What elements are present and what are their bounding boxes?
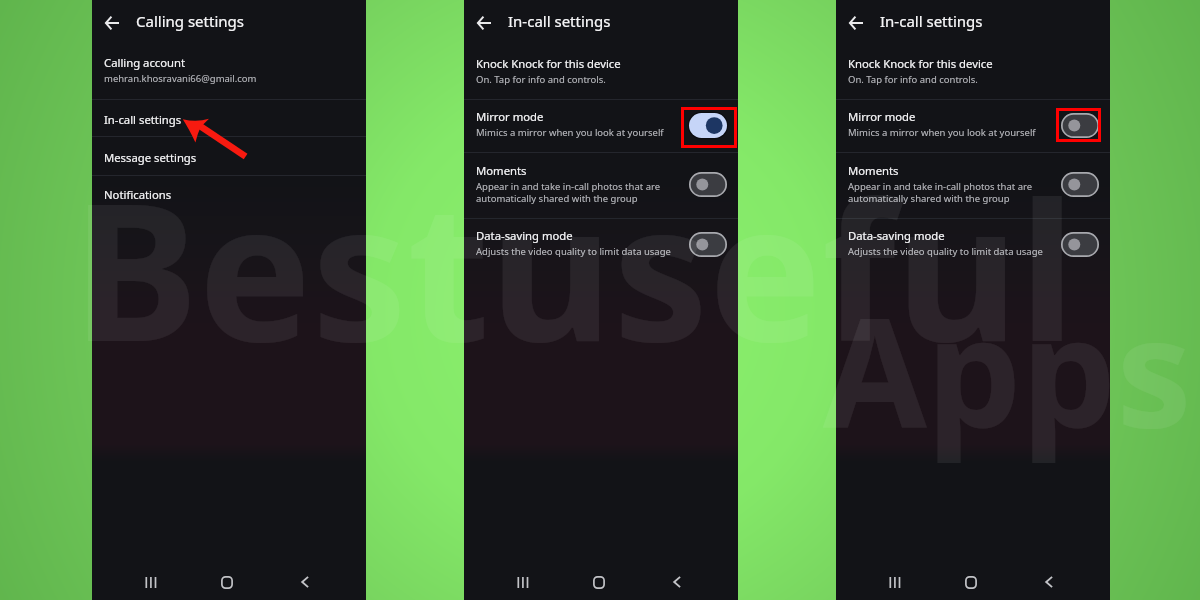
staticText: Moments	[476, 163, 527, 178]
staticText: Appear in and take in-call photos that a…	[476, 180, 661, 204]
staticText: Mimics a mirror when you look at yoursel…	[476, 126, 664, 139]
button[interactable]: Recent apps	[132, 563, 170, 600]
staticText: Moments	[848, 163, 899, 178]
staticText: Mirror mode	[848, 109, 916, 124]
staticText: Data-saving mode	[848, 228, 945, 243]
button[interactable]: Switch off	[1061, 232, 1099, 257]
button[interactable]: Back	[658, 563, 696, 600]
button[interactable]: Navigate up	[841, 8, 871, 38]
button[interactable]: Home	[580, 563, 618, 600]
staticText: In-call settings	[508, 11, 611, 31]
button[interactable]: Mirror mode	[836, 100, 1110, 152]
button[interactable]: Mirror mode	[464, 100, 738, 152]
button[interactable]: Switch off	[689, 172, 727, 197]
staticText: Mimics a mirror when you look at yoursel…	[848, 126, 1036, 139]
button[interactable]: Home	[208, 563, 246, 600]
staticText: In-call settings	[104, 112, 182, 127]
button[interactable]: Moments	[464, 153, 738, 218]
staticText: Knock Knock for this device	[476, 56, 621, 71]
button[interactable]: Knock Knock for this device	[836, 46, 1110, 99]
staticText: Message settings	[104, 150, 197, 165]
button[interactable]: Switch off	[1061, 172, 1099, 197]
staticText: Apps	[823, 267, 1192, 471]
button[interactable]: Data-saving mode	[836, 219, 1110, 272]
staticText: On. Tap for info and controls.	[848, 73, 978, 86]
button[interactable]: Navigate up	[97, 8, 127, 38]
staticText: Appear in and take in-call photos that a…	[848, 180, 1033, 204]
button[interactable]: Knock Knock for this device	[464, 46, 738, 99]
staticText: Notifications	[104, 187, 172, 202]
button[interactable]: Switch on	[689, 113, 727, 138]
button[interactable]: Calling account	[92, 46, 366, 99]
button[interactable]: Moments	[836, 153, 1110, 218]
button[interactable]: Switch off	[1061, 113, 1099, 138]
staticText: Mirror mode	[476, 109, 544, 124]
button[interactable]: Recent apps	[504, 563, 542, 600]
staticText: Adjusts the video quality to limit data …	[848, 245, 1043, 258]
staticText: Knock Knock for this device	[848, 56, 993, 71]
button[interactable]: Data-saving mode	[464, 219, 738, 272]
button[interactable]: Notifications	[92, 176, 366, 212]
button[interactable]: Navigate up	[469, 8, 499, 38]
button[interactable]: Switch off	[689, 232, 727, 257]
button[interactable]: Back	[286, 563, 324, 600]
button[interactable]: In-call settings	[92, 100, 366, 136]
button[interactable]: Message settings	[92, 137, 366, 175]
staticText: Calling account	[104, 55, 186, 70]
staticText: Adjusts the video quality to limit data …	[476, 245, 671, 258]
staticText: On. Tap for info and controls.	[476, 73, 606, 86]
staticText: Data-saving mode	[476, 228, 573, 243]
staticText: In-call settings	[880, 11, 983, 31]
button[interactable]: Back	[1030, 563, 1068, 600]
staticText: mehran.khosravani66@gmail.com	[104, 72, 257, 85]
staticText: Bestuseful	[72, 138, 1076, 397]
button[interactable]: Recent apps	[876, 563, 914, 600]
button[interactable]: Home	[952, 563, 990, 600]
staticText: Calling settings	[136, 11, 244, 31]
